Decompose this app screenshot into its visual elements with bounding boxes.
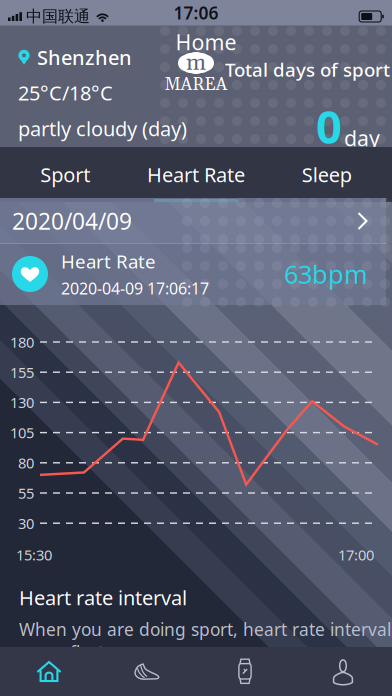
button[interactable]: Sport [0,147,131,202]
staticText: MAREA [164,74,227,96]
staticText: Heart Rate [61,249,156,274]
staticText: Total days of sport [225,57,390,82]
staticText: 2020-04-09 17:06:17 [61,278,209,299]
staticText: 15:30 [16,545,52,564]
staticText: Heart rate interval [19,584,187,611]
staticText: 55 [18,483,34,503]
staticText: Heart Rate [147,161,245,188]
staticText: 2020/04/09 [12,206,132,236]
staticText: 155 [10,362,34,382]
staticText: Shenzhen [37,44,132,71]
staticText: 0 [316,96,342,156]
staticText: 17:00 [338,545,374,564]
staticText: 105 [10,423,34,442]
staticText: partly cloudy (day) [18,115,187,142]
staticText: 17:06 [173,1,218,24]
staticText: m [186,49,206,77]
button[interactable]: Profile [294,647,392,696]
staticText: 180 [10,332,34,352]
button[interactable]: Device [196,647,294,696]
staticText: 30 [18,513,34,533]
staticText: Sleep [302,161,352,188]
staticText: Home [175,28,236,56]
button[interactable]: Sport [98,647,196,696]
staticText: Sport [40,161,90,188]
button[interactable]: Home [0,647,98,696]
button[interactable]: Sleep [261,147,392,202]
staticText: day [344,124,380,152]
staticText: 25°C/18°C [18,80,113,106]
button[interactable]: 2020/04/09 [0,198,392,252]
staticText: 130 [10,393,34,412]
staticText: 中国联通 [26,7,90,26]
staticText: 80 [18,453,34,473]
staticText: When you are doing sport, heart rate int… [19,618,391,664]
staticText: 63bpm [284,257,368,291]
button[interactable]: Heart Rate [131,147,261,202]
